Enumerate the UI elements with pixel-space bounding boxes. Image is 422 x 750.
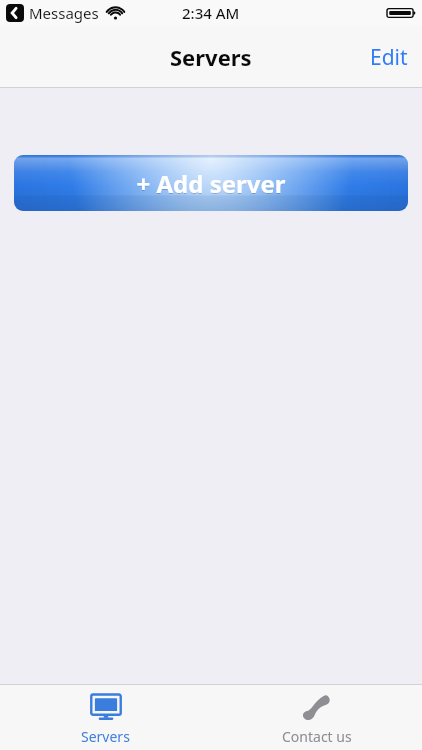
- button[interactable]: Contact us: [211, 685, 422, 750]
- button[interactable]: Edit: [356, 33, 422, 82]
- other: Back to Messages: [6, 4, 24, 22]
- other: Contact us: [302, 693, 332, 723]
- staticText: + Add server: [136, 167, 286, 200]
- staticText: Servers: [170, 42, 252, 72]
- staticText: Servers: [81, 727, 130, 746]
- other: Servers: [90, 694, 122, 722]
- staticText: 2:34 AM: [182, 3, 240, 23]
- staticText: Messages: [29, 3, 99, 23]
- button[interactable]: + Add server: [14, 155, 408, 211]
- button[interactable]: Servers: [0, 685, 211, 750]
- staticText: Contact us: [282, 727, 352, 746]
- staticText: Edit: [370, 43, 408, 72]
- staticText: + Add server: [136, 168, 286, 201]
